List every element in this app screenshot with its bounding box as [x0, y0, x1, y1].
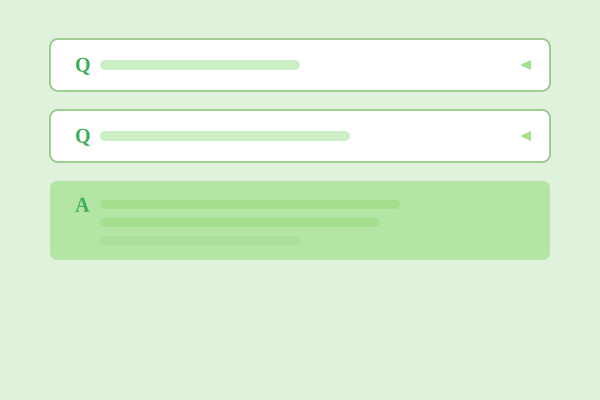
button[interactable]: Question 1	[50, 39, 550, 91]
staticText: Q	[75, 125, 91, 147]
button[interactable]: Question 2	[50, 110, 550, 162]
staticText: A	[75, 194, 89, 216]
staticText: Q	[75, 54, 91, 76]
button[interactable]: Answer	[50, 181, 550, 260]
